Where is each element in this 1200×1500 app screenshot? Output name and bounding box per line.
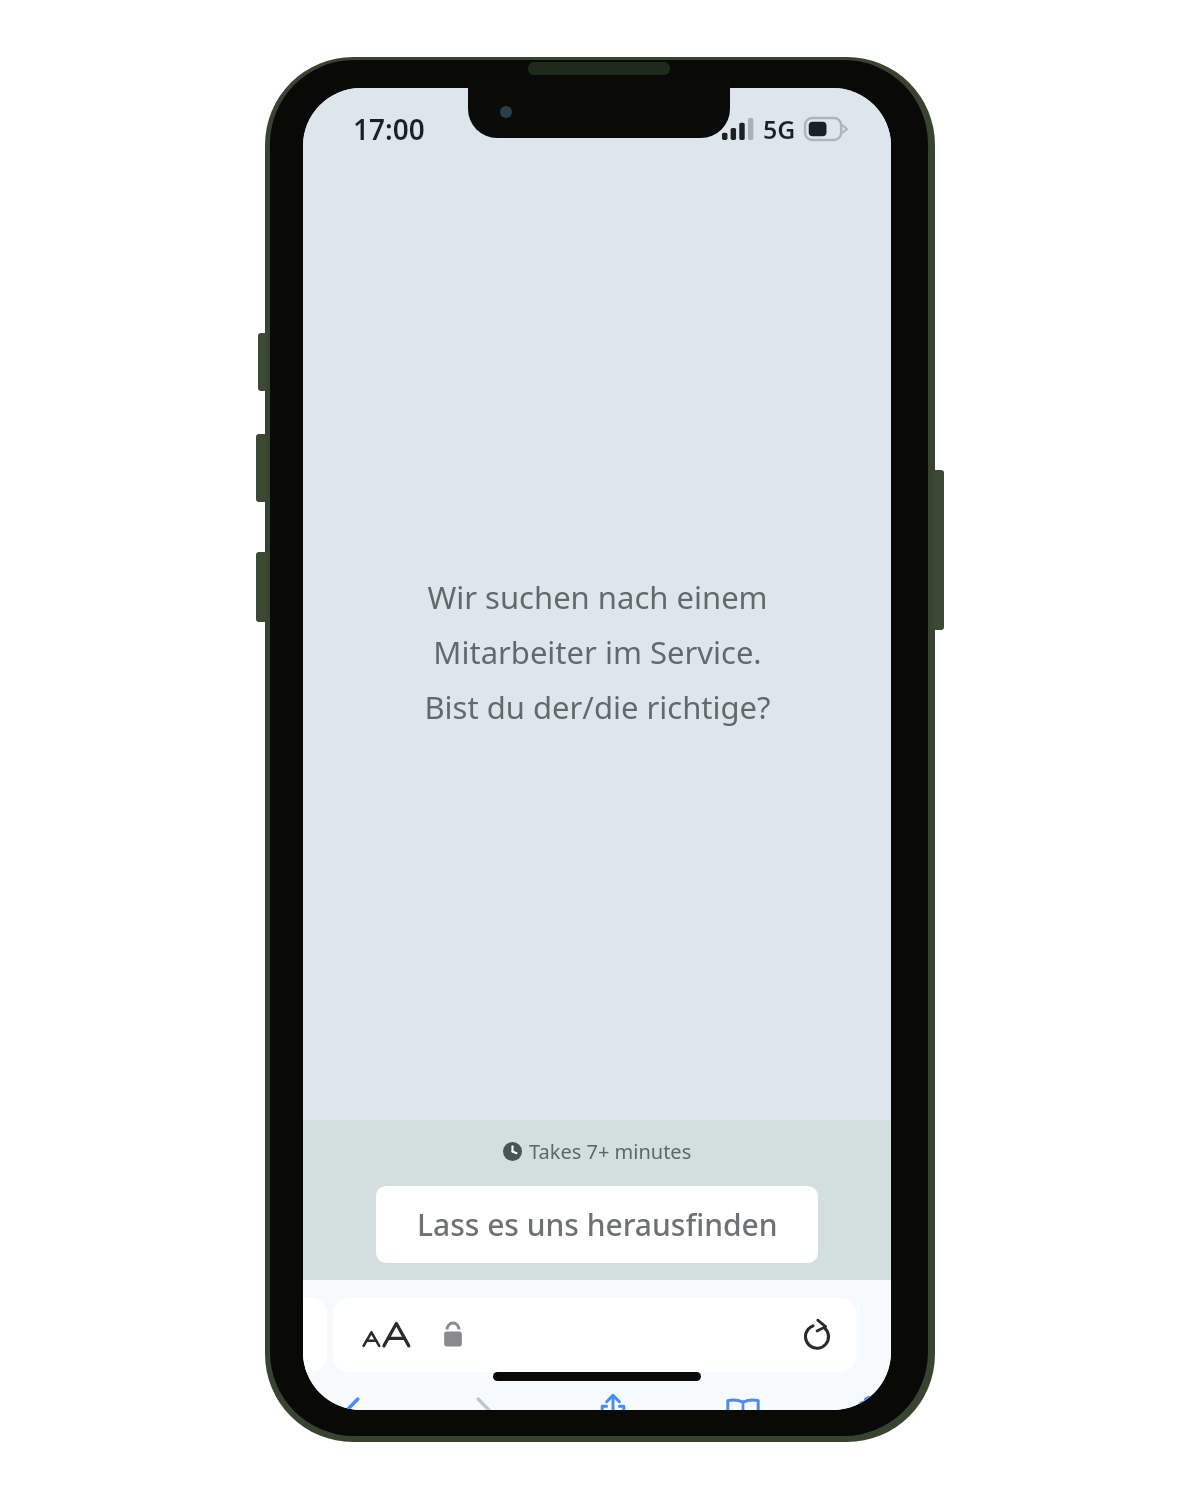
other: Secure connection bbox=[440, 1320, 466, 1350]
staticText: Wir suchen nach einem bbox=[427, 576, 768, 618]
button[interactable]: Forward bbox=[447, 1380, 519, 1410]
staticText: Lass es uns herausfinden bbox=[417, 1204, 778, 1245]
button[interactable]: Back bbox=[317, 1380, 389, 1410]
button[interactable]: Bookmarks bbox=[707, 1380, 779, 1410]
button[interactable]: Text size bbox=[361, 1318, 413, 1352]
staticText: 5G bbox=[763, 112, 796, 146]
staticText: Takes 7+ minutes bbox=[529, 1138, 692, 1165]
button[interactable]: Reload bbox=[799, 1318, 835, 1354]
staticText: Mitarbeiter im Service. bbox=[433, 631, 762, 673]
button[interactable]: Text size bbox=[333, 1298, 856, 1372]
staticText: 17:00 bbox=[353, 110, 425, 148]
button[interactable]: Lass es uns herausfinden bbox=[376, 1186, 818, 1263]
staticText: Bist du der/die richtige? bbox=[424, 686, 771, 728]
button[interactable]: Share bbox=[577, 1380, 649, 1410]
button[interactable]: Tabs bbox=[837, 1380, 891, 1410]
